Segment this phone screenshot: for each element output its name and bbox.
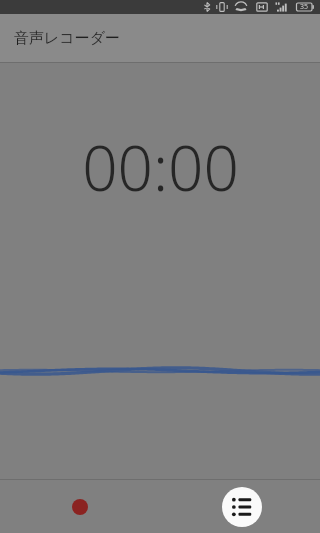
staticText: 00:00 — [82, 125, 239, 209]
staticText: 35 — [300, 2, 309, 12]
button[interactable]: 音声レコーダー — [0, 14, 320, 62]
staticText: 音声レコーダー — [14, 29, 121, 48]
button[interactable]: Recordings list — [222, 487, 262, 527]
button[interactable]: Record — [56, 483, 104, 531]
